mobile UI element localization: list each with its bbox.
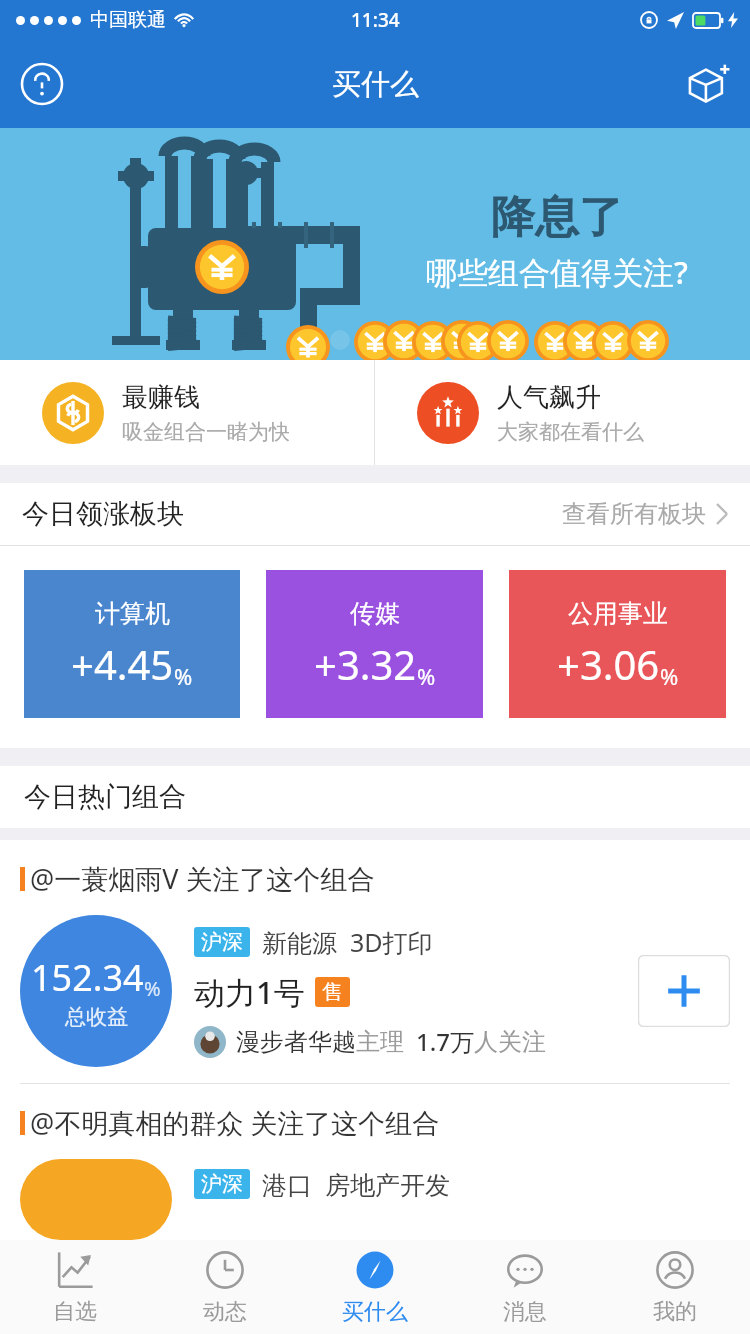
staticText: 降息了 [491, 190, 623, 245]
staticText: 人气飙升 [497, 381, 601, 414]
staticText: 大家都在看什么 [497, 419, 644, 445]
button[interactable]: 消息 [450, 1240, 600, 1334]
staticText: 售 [322, 979, 343, 1005]
staticText: 自选 [53, 1298, 97, 1326]
button[interactable]: 动态 [150, 1240, 300, 1334]
staticText: @不明真相的群众 关注了这个组合 [30, 1104, 440, 1141]
staticText: +3.32 [314, 637, 417, 691]
button[interactable]: 我的 [600, 1240, 750, 1334]
staticText: @一蓑烟雨V 关注了这个组合 [30, 860, 375, 897]
staticText: % [417, 661, 436, 691]
staticText: % [174, 661, 193, 691]
staticText: 港口 房地产开发 [262, 1167, 451, 1201]
staticText: 动态 [203, 1298, 247, 1326]
staticText: 沪深 [201, 1171, 243, 1197]
button[interactable]: 人气飙升 [375, 360, 750, 465]
staticText: 中国联通 [90, 8, 166, 32]
button[interactable]: 添加 [638, 955, 730, 1027]
button[interactable]: @一蓑烟雨V 关注了这个组合 [0, 840, 750, 1084]
staticText: +3.06 [557, 637, 660, 691]
button[interactable]: 传媒 [266, 570, 483, 718]
staticText: 人关注 [474, 1027, 546, 1057]
staticText: % [660, 661, 679, 691]
button[interactable]: 计算机 [24, 570, 240, 718]
staticText: 漫步者华越 [236, 1027, 356, 1057]
button[interactable]: 帮助 [14, 56, 70, 112]
staticText: 今日领涨板块 [22, 497, 184, 531]
button[interactable]: 公用事业 [509, 570, 726, 718]
staticText: 11:34 [351, 7, 400, 33]
staticText: 152.34 [31, 953, 144, 1002]
staticText: % [144, 975, 161, 1002]
staticText: 吸金组合一睹为快 [122, 419, 290, 445]
staticText: 消息 [503, 1298, 547, 1326]
staticText: 查看所有板块 [562, 499, 706, 529]
staticText: 沪深 [201, 929, 243, 955]
staticText: 计算机 [95, 598, 170, 629]
button[interactable]: @不明真相的群众 关注了这个组合 [0, 1084, 750, 1240]
button[interactable]: 今日热门组合 [0, 766, 750, 828]
staticText: 买什么 [332, 66, 419, 103]
button[interactable]: 自选 [0, 1240, 150, 1334]
staticText: 动力1号 [194, 971, 305, 1013]
button[interactable]: 新建组合 [680, 56, 736, 112]
staticText: 哪些组合值得关注? [426, 251, 688, 293]
staticText: 公用事业 [568, 598, 668, 629]
staticText: 主理 [356, 1027, 404, 1057]
staticText: 传媒 [350, 598, 400, 629]
staticText: 买什么 [342, 1298, 408, 1326]
button[interactable]: 买什么 [300, 1240, 450, 1334]
staticText: 最赚钱 [122, 381, 200, 414]
staticText: 今日热门组合 [24, 780, 186, 814]
staticText: 总收益 [65, 1004, 128, 1030]
staticText: 我的 [653, 1298, 697, 1326]
staticText: +4.45 [71, 637, 174, 691]
button[interactable]: 今日领涨板块 [0, 483, 750, 545]
staticText: 1.7万 [416, 1025, 474, 1058]
staticText: 新能源 3D打印 [262, 925, 433, 959]
button[interactable]: 最赚钱 [0, 360, 374, 465]
button[interactable]: 降息了 哪些组合值得关注 [0, 128, 750, 360]
